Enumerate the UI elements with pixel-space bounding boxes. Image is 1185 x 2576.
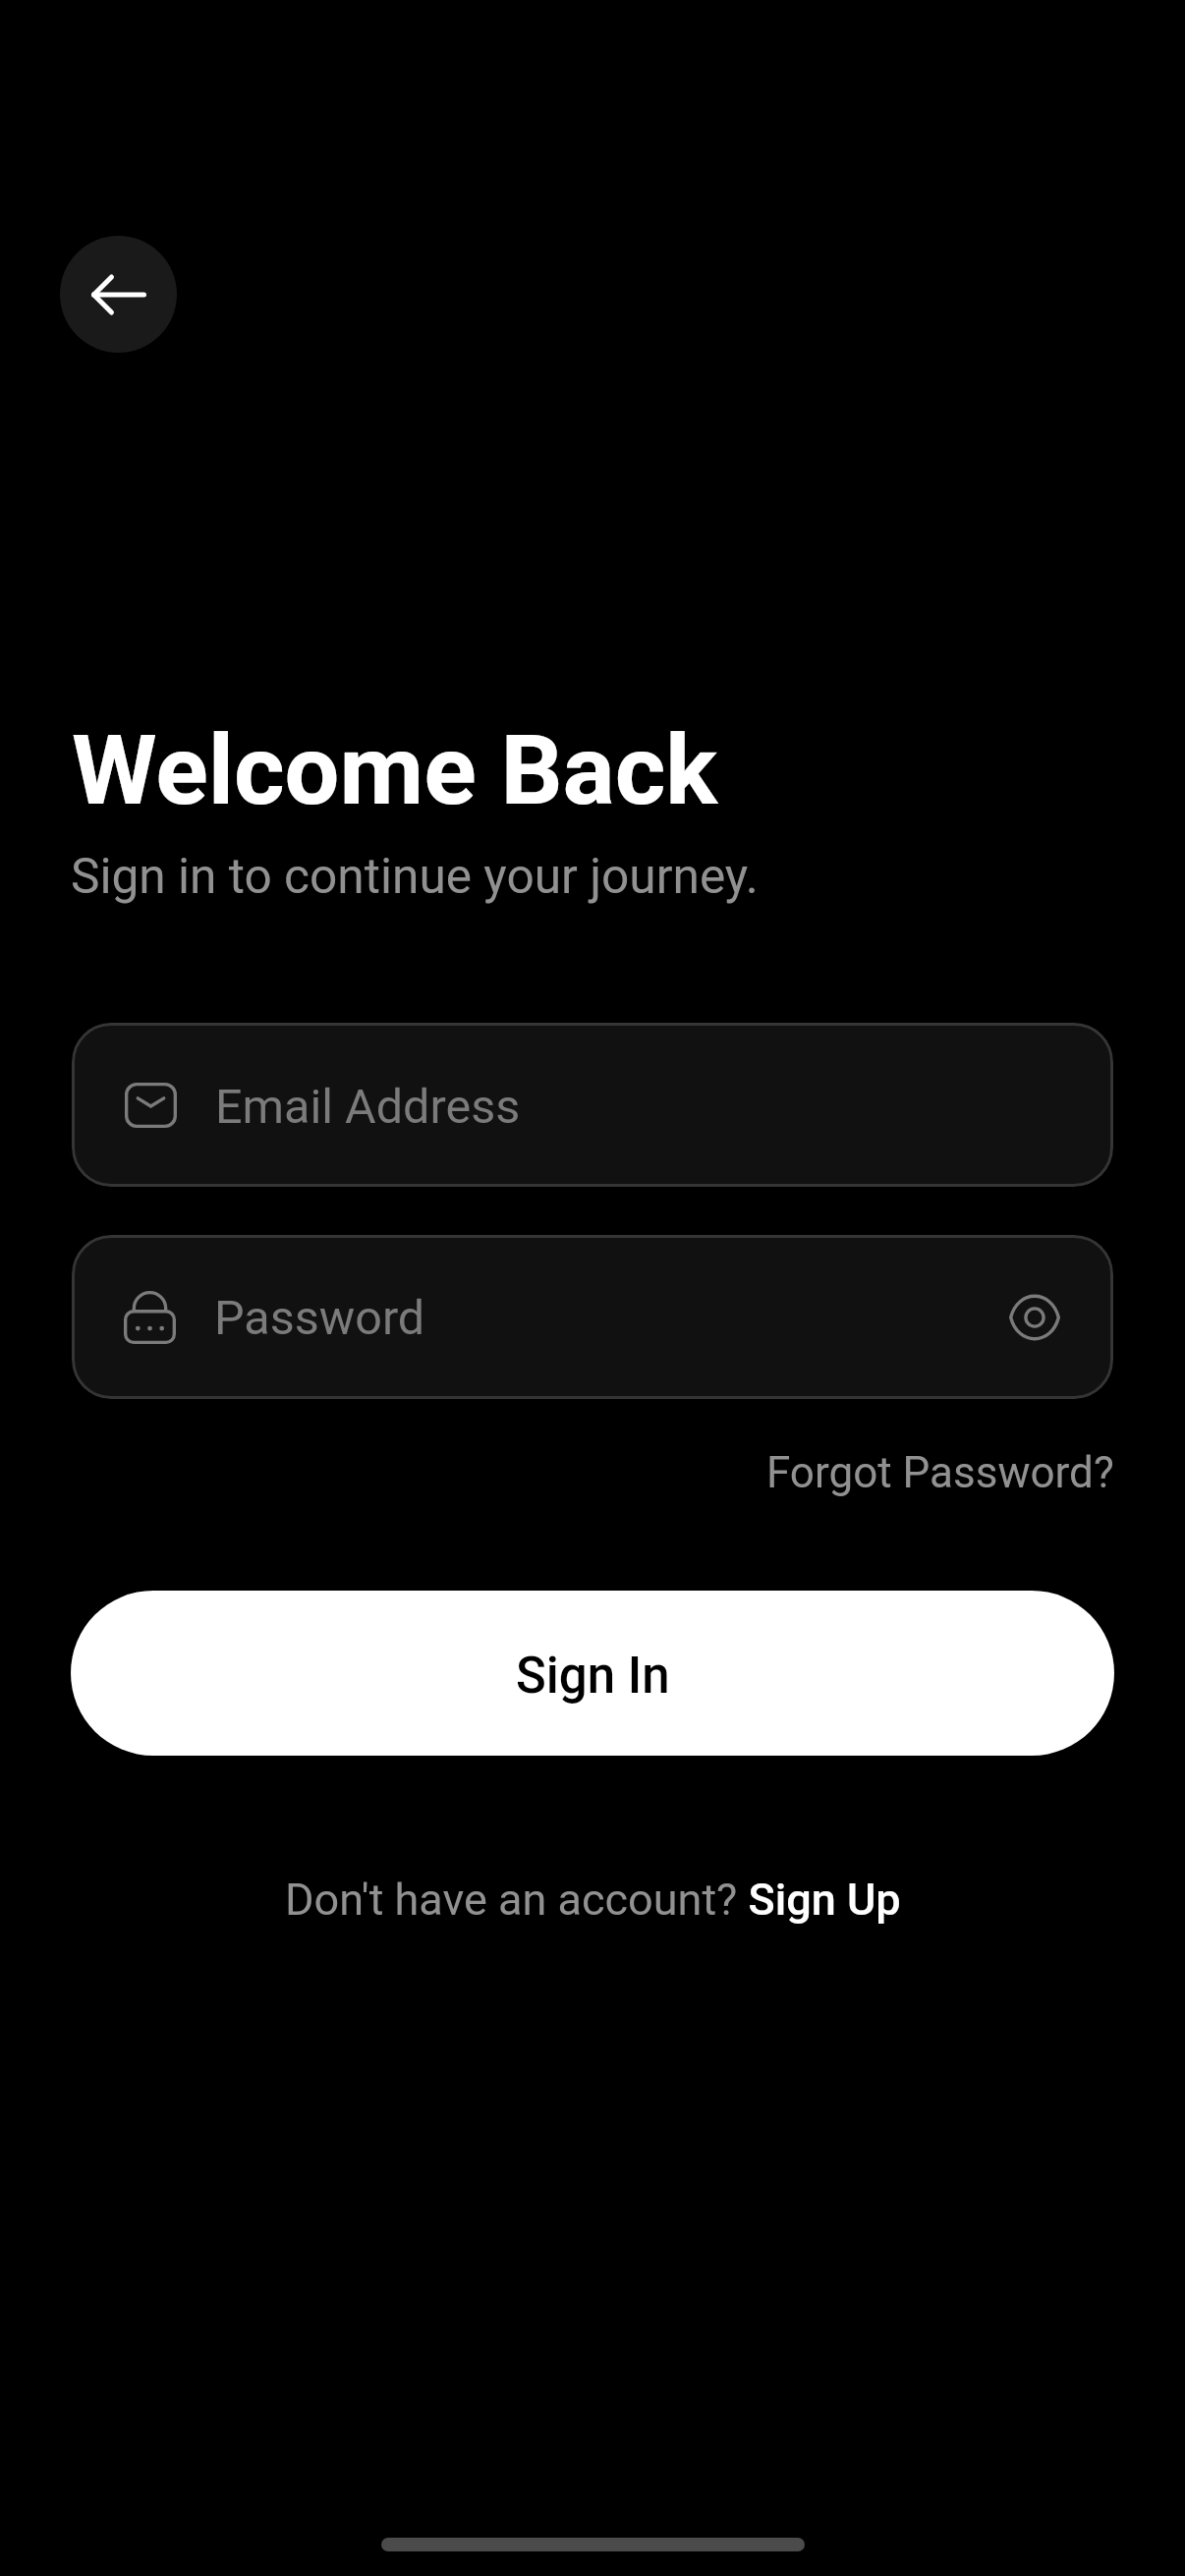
staticText: Sign In [516, 1647, 670, 1706]
staticText: Don't have an account? Sign Up [285, 1874, 901, 1926]
button[interactable]: Password [72, 1235, 1113, 1399]
staticText: Password [214, 1290, 425, 1346]
staticText: Sign in to continue your journey. [71, 848, 759, 905]
button[interactable]: Don't have an account? Sign Up [269, 1858, 917, 1941]
button[interactable]: Forgot Password? [745, 1426, 1136, 1520]
button[interactable]: Back [60, 236, 177, 353]
button[interactable]: Show password [984, 1266, 1086, 1369]
button[interactable]: Email Address [72, 1023, 1113, 1187]
staticText: Welcome Back [72, 713, 718, 827]
staticText: Forgot Password? [766, 1447, 1114, 1498]
staticText: Email Address [215, 1079, 521, 1135]
button[interactable]: Sign In [71, 1591, 1114, 1756]
